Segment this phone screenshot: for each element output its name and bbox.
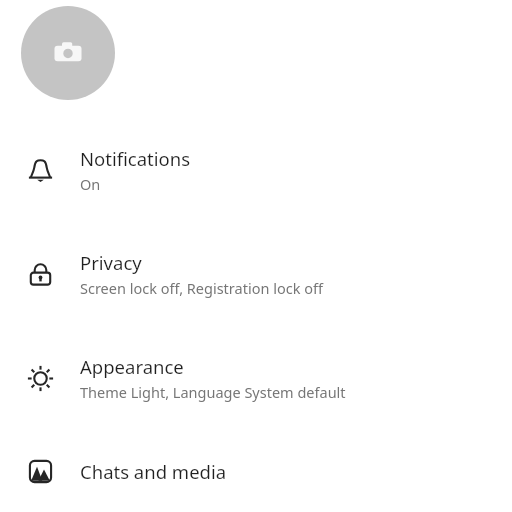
button[interactable]: Appearance: [0, 326, 512, 430]
other: Privacy: [0, 222, 80, 326]
staticText: On: [80, 174, 101, 194]
other: Notifications: [0, 118, 80, 222]
staticText: Privacy: [80, 250, 142, 275]
staticText: Notifications: [80, 146, 191, 171]
button[interactable]: Chats and media: [0, 430, 512, 512]
button[interactable]: Notifications: [0, 118, 512, 222]
staticText: Screen lock off, Registration lock off: [80, 278, 323, 298]
other: Chats and media: [0, 430, 80, 512]
other: Appearance: [0, 326, 80, 430]
staticText: Theme Light, Language System default: [80, 382, 346, 402]
staticText: Chats and media: [80, 459, 227, 484]
staticText: Appearance: [80, 354, 184, 379]
button[interactable]: Privacy: [0, 222, 512, 326]
button[interactable]: Change profile photo: [21, 6, 115, 100]
